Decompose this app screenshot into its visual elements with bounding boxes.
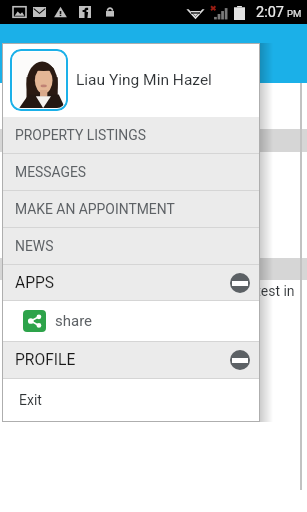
staticText: 2:07 — [256, 4, 284, 21]
staticText: PM — [287, 8, 302, 19]
staticText: share — [55, 312, 93, 330]
button[interactable]: share — [2, 301, 260, 341]
staticText: Latest in — [241, 283, 295, 299]
button[interactable]: Liau Ying Min Hazel — [2, 43, 260, 117]
staticText: APPS — [15, 274, 55, 292]
staticText: MAKE AN APPOINTMENT — [15, 201, 175, 217]
staticText: MESSAGES — [15, 164, 87, 180]
button[interactable]: APPS — [2, 265, 260, 300]
staticText: Exit — [19, 392, 42, 408]
button[interactable]: MESSAGES — [2, 154, 260, 190]
staticText: Liau Ying Min Hazel — [76, 71, 212, 89]
staticText: PROPERTY LISTINGS — [15, 127, 146, 143]
other: Collapse section — [230, 350, 250, 370]
staticText: PROFILE — [15, 351, 76, 369]
other: Collapse section — [230, 273, 250, 293]
button[interactable]: PROPERTY LISTINGS — [2, 117, 260, 153]
button[interactable]: Exit — [2, 379, 260, 420]
button[interactable]: MAKE AN APPOINTMENT — [2, 191, 260, 227]
button[interactable]: NEWS — [2, 228, 260, 264]
staticText: NEWS — [15, 238, 54, 254]
button[interactable]: PROFILE — [2, 342, 260, 378]
